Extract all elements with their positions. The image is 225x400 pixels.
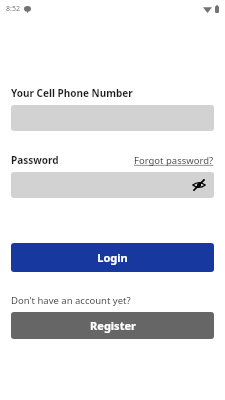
button[interactable]: Show password [11,172,214,198]
staticText: Password [11,153,59,167]
staticText: Your Cell Phone Number [11,86,133,100]
staticText: Register [90,318,136,333]
staticText: Forgot password? [134,154,214,167]
button[interactable]: Register [11,312,214,339]
button[interactable]: Login [11,243,214,272]
staticText: Login [97,250,128,265]
staticText: Don't have an account yet? [11,294,131,307]
button[interactable]: Forgot password? [134,154,214,167]
button[interactable]: Show password [192,178,206,192]
staticText: 8:52 [6,4,20,14]
